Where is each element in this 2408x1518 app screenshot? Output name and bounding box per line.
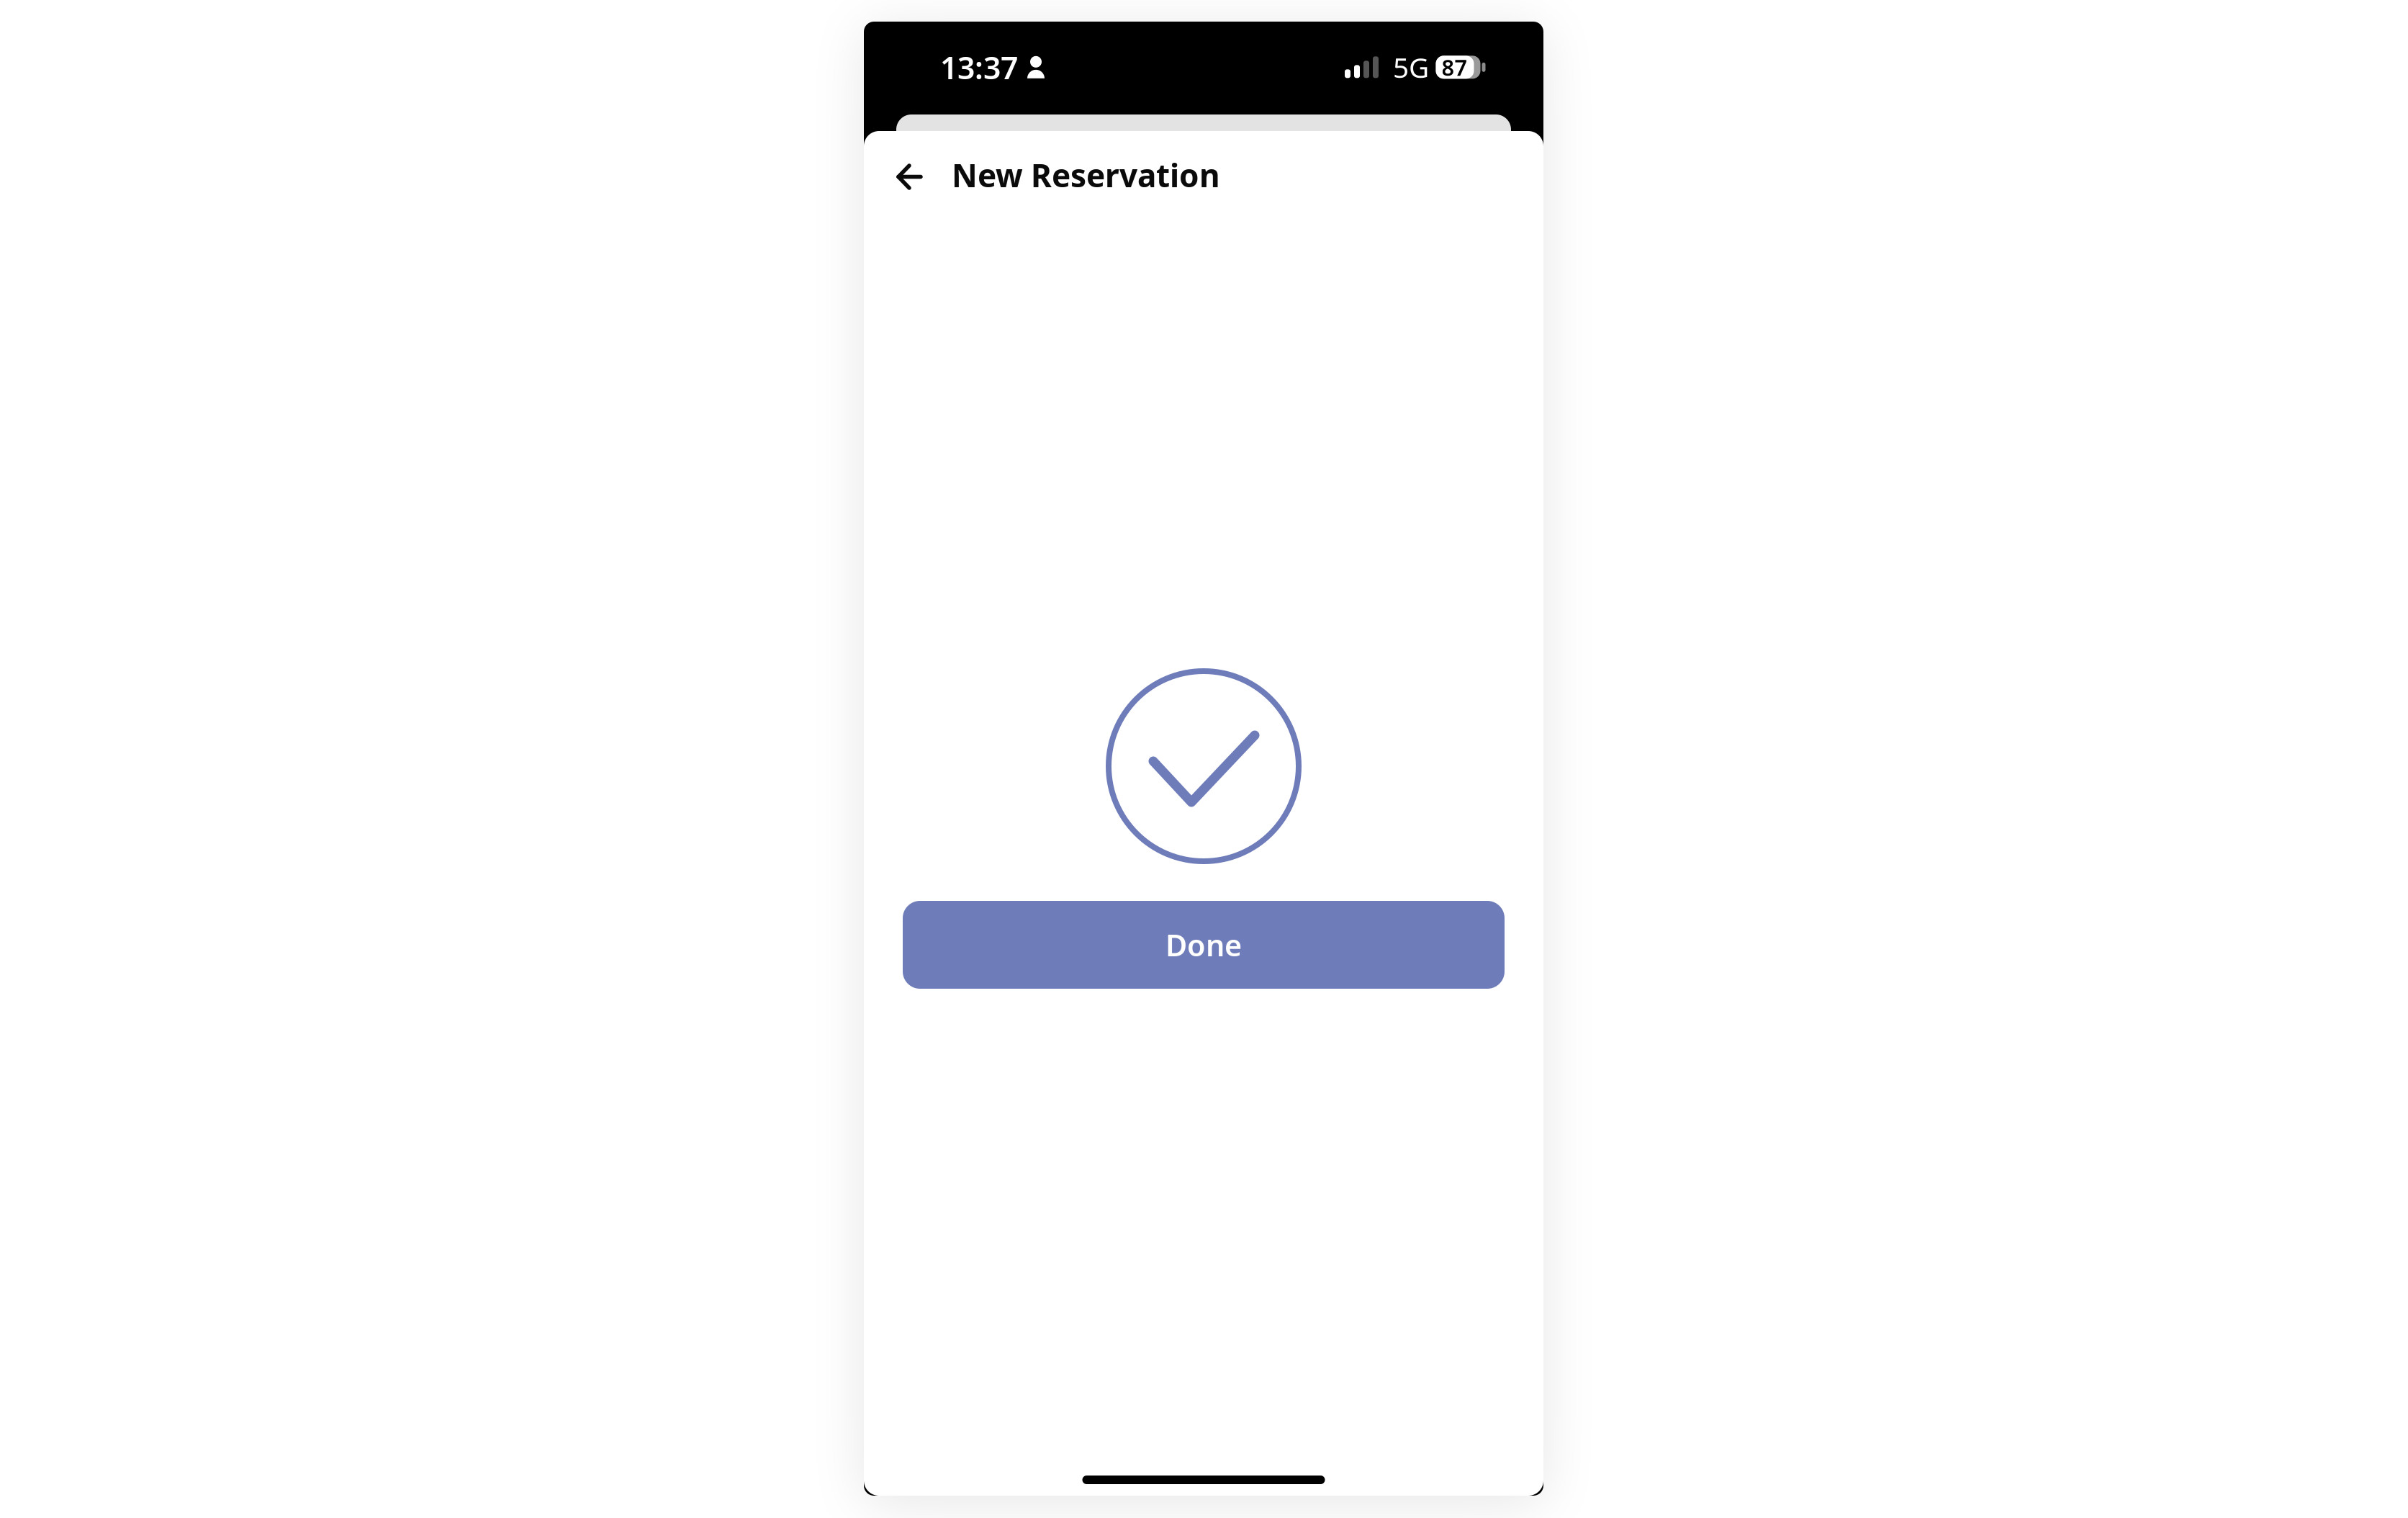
staticText: 13:37	[940, 47, 1018, 88]
button[interactable]: Back	[885, 149, 935, 201]
staticText: 87	[1442, 53, 1467, 82]
staticText: 5G	[1393, 49, 1429, 86]
staticText: Done	[1165, 925, 1242, 965]
button[interactable]: Done	[903, 901, 1505, 989]
staticText: New Reservation	[952, 154, 1220, 196]
